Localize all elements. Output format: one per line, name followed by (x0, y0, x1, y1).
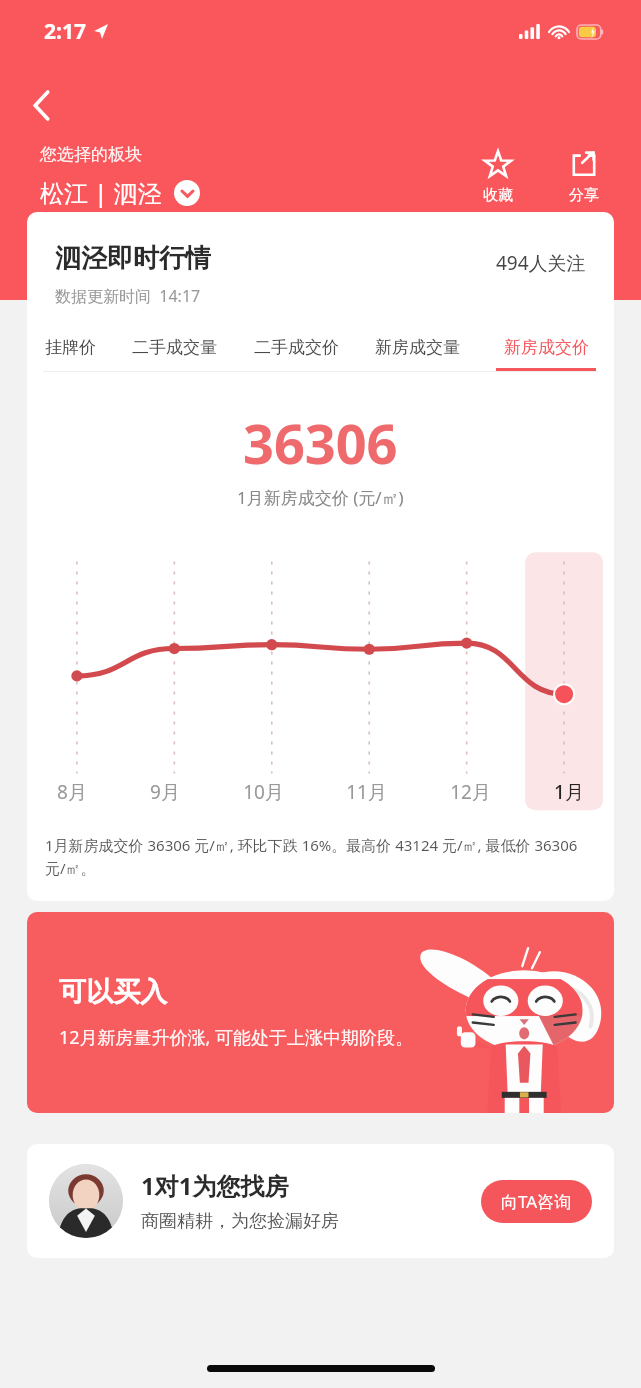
staticText: 1月 (554, 779, 584, 805)
staticText: 收藏 (483, 186, 513, 205)
staticText: 494人关注 (496, 250, 586, 276)
button[interactable]: 新房成交价 (494, 337, 598, 371)
staticText: 可以买入 (59, 975, 167, 1009)
staticText: 商圈精耕，为您捡漏好房 (141, 1210, 339, 1233)
staticText: 您选择的板块 (40, 144, 142, 165)
button[interactable]: 1对1为您找房 (27, 1144, 614, 1258)
staticText: 9月 (150, 779, 180, 805)
staticText: 8月 (57, 779, 87, 805)
button[interactable]: 收藏 (475, 145, 521, 209)
button[interactable]: 新房成交量 (373, 337, 462, 371)
staticText: 二手成交价 (254, 337, 339, 358)
button[interactable]: 二手成交价 (252, 337, 341, 371)
button[interactable]: Change area (174, 180, 200, 206)
staticText: 1月新房成交价 36306 元/㎡, 环比下跌 16%。最高价 43124 元/… (45, 835, 596, 879)
staticText: 泗泾即时行情 (55, 242, 211, 275)
staticText: 新房成交量 (375, 337, 460, 358)
staticText: 12月新房量升价涨, 可能处于上涨中期阶段。 (59, 1025, 414, 1050)
button[interactable]: 挂牌价 (43, 337, 98, 371)
staticText: 分享 (569, 186, 599, 205)
button[interactable]: 二手成交量 (130, 337, 219, 371)
staticText: 数据更新时间 14:17 (55, 285, 201, 307)
staticText: 向TA咨询 (501, 1190, 572, 1213)
staticText: 12月 (450, 779, 491, 805)
staticText: 1月新房成交价 (元/㎡) (237, 486, 404, 509)
staticText: 11月 (346, 779, 387, 805)
staticText: 挂牌价 (45, 337, 96, 358)
staticText: 新房成交价 (504, 337, 589, 358)
button[interactable]: 分享 (561, 145, 607, 209)
staticText: 2:17 (44, 17, 86, 46)
staticText: 36306 (243, 406, 398, 480)
staticText: 1对1为您找房 (141, 1169, 289, 1202)
button[interactable]: 向TA咨询 (481, 1180, 592, 1223)
staticText: 10月 (243, 779, 284, 805)
button[interactable]: Back (18, 82, 64, 128)
staticText: 松江 | 泗泾 (40, 176, 162, 209)
button[interactable]: 可以买入 (27, 912, 614, 1113)
staticText: 二手成交量 (132, 337, 217, 358)
